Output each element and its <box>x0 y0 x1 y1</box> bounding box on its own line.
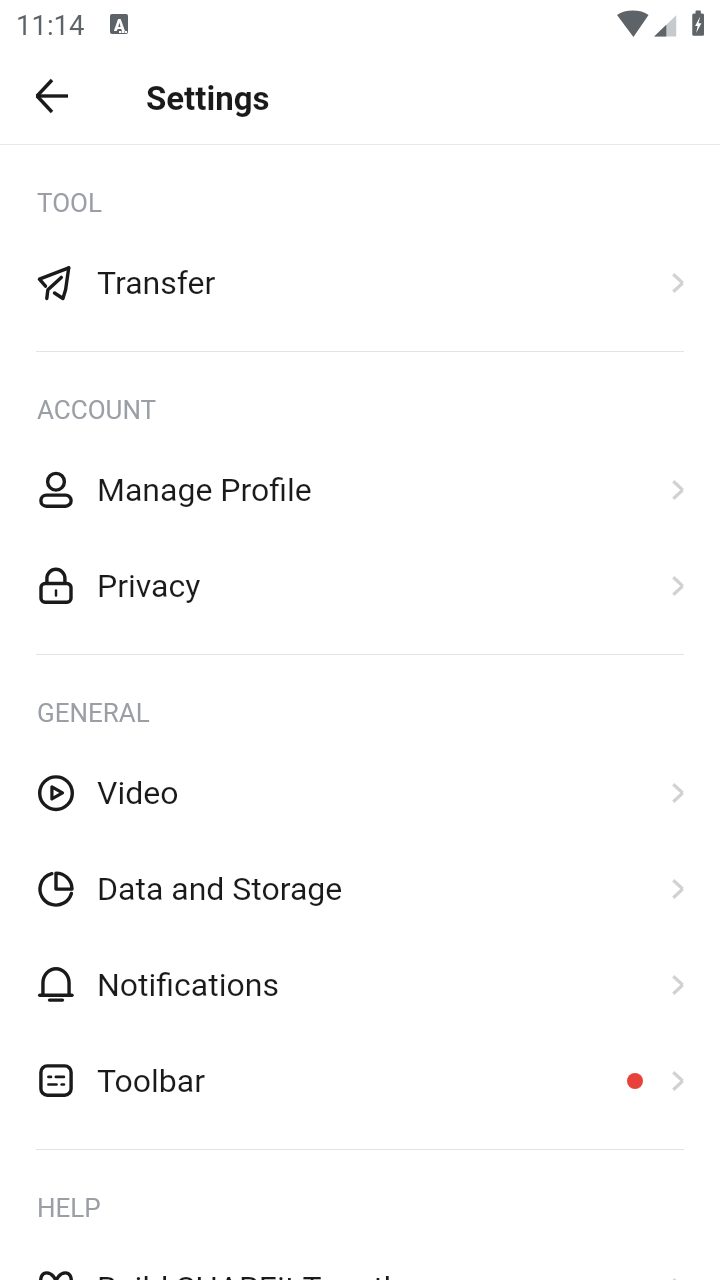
button[interactable]: Data and Storage <box>0 841 720 937</box>
staticText: HELP <box>37 1193 101 1223</box>
staticText: Toolbar <box>97 1062 206 1100</box>
button[interactable]: Privacy <box>0 538 720 634</box>
staticText: Settings <box>146 79 270 118</box>
staticText: GENERAL <box>37 698 150 728</box>
staticText: Video <box>97 774 179 812</box>
staticText: A <box>114 16 125 34</box>
staticText: Manage Profile <box>97 471 312 509</box>
staticText: 11:14 <box>16 9 85 41</box>
staticText: Privacy <box>97 567 201 605</box>
staticText: Notifications <box>97 966 279 1004</box>
button[interactable]: Transfer <box>0 235 720 331</box>
staticText: Transfer <box>97 264 216 302</box>
button[interactable]: Build SHAREit Together <box>0 1240 720 1280</box>
staticText: Data and Storage <box>97 870 343 908</box>
staticText: Build SHAREit Together <box>97 1269 430 1280</box>
button[interactable]: Video <box>0 745 720 841</box>
button[interactable]: Back <box>24 68 80 124</box>
button[interactable]: Manage Profile <box>0 442 720 538</box>
button[interactable]: Notifications <box>0 937 720 1033</box>
staticText: TOOL <box>37 188 102 218</box>
button[interactable]: Toolbar <box>0 1033 720 1129</box>
staticText: ACCOUNT <box>37 395 157 425</box>
